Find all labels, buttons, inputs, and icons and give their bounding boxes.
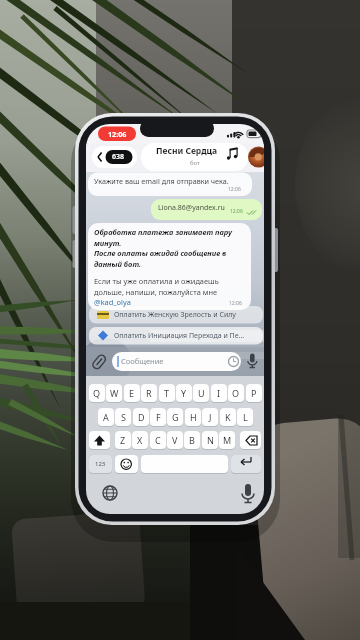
staticText: A — [103, 411, 109, 423]
staticText: C — [155, 434, 161, 446]
staticText: 12:06 — [108, 129, 127, 139]
staticText: K — [225, 411, 231, 423]
staticText: 638 — [112, 152, 125, 162]
staticText: Y — [181, 387, 187, 399]
staticText: B — [189, 434, 195, 446]
button[interactable]: H — [185, 408, 201, 426]
staticText: X — [137, 434, 143, 446]
button[interactable]: W — [106, 384, 122, 402]
staticText: 12:06 — [228, 186, 241, 193]
button[interactable] — [89, 431, 110, 449]
staticText: T — [164, 387, 170, 399]
staticText: S — [121, 411, 126, 423]
button[interactable]: 638 — [105, 150, 132, 164]
staticText: Песни Сердца — [156, 145, 218, 157]
button[interactable]: C — [150, 431, 166, 449]
staticText: Оплатить Инициация Перехода и Пе... — [114, 331, 245, 341]
staticText: P — [251, 387, 257, 399]
button[interactable]: I — [211, 384, 227, 402]
staticText: H — [190, 411, 197, 423]
staticText: O — [232, 387, 240, 399]
button[interactable]: R — [141, 384, 157, 402]
button[interactable] — [115, 455, 138, 473]
button[interactable]: A — [98, 408, 114, 426]
staticText: V — [172, 434, 178, 446]
staticText: D — [138, 411, 145, 423]
staticText: данный бот. — [94, 259, 142, 269]
button[interactable]: G — [167, 408, 183, 426]
button[interactable]: P — [246, 384, 262, 402]
staticText: бот — [190, 159, 200, 167]
button[interactable]: K — [220, 408, 236, 426]
button[interactable]: B — [184, 431, 200, 449]
button[interactable] — [231, 455, 261, 473]
staticText: Q — [93, 387, 101, 399]
staticText: Сообщение — [121, 356, 164, 366]
staticText: Если ты уже оплатила и ожидаешь — [94, 276, 219, 286]
staticText: W — [110, 387, 119, 399]
staticText: F — [156, 411, 161, 423]
button[interactable]: U — [193, 384, 209, 402]
staticText: Оплатить Женскую Зрелость и Силу — [114, 310, 236, 320]
staticText: G — [172, 411, 179, 423]
button[interactable]: E — [124, 384, 140, 402]
button[interactable] — [141, 455, 228, 473]
staticText: U — [198, 387, 205, 399]
staticText: Обработка платежа занимает пару — [94, 227, 233, 237]
button[interactable]: J — [202, 408, 218, 426]
button[interactable]: Песни Сердца — [141, 144, 233, 158]
staticText: R — [146, 387, 152, 399]
button[interactable]: Q — [89, 384, 105, 402]
button[interactable]: F — [150, 408, 166, 426]
staticText: дольше, напиши, пожалуйста мне — [94, 287, 218, 297]
button[interactable]: 123 — [89, 455, 112, 473]
button[interactable]: S — [115, 408, 131, 426]
staticText: N — [207, 434, 214, 446]
staticText: Z — [120, 434, 126, 446]
staticText: Укажите ваш email для отправки чека. — [94, 176, 229, 186]
staticText: M — [223, 434, 232, 446]
staticText: После оплаты ожидай сообщение в — [94, 248, 227, 258]
button[interactable]: V — [167, 431, 183, 449]
staticText: минут. — [94, 238, 122, 248]
button[interactable]: Сообщение — [112, 352, 241, 371]
button[interactable]: D — [133, 408, 149, 426]
button[interactable]: N — [202, 431, 218, 449]
staticText: 12:06 — [230, 208, 243, 215]
button[interactable] — [240, 431, 261, 449]
staticText: @kad_olya — [94, 297, 131, 307]
staticText: I — [217, 387, 221, 399]
staticText: Liona.86@yandex.ru — [158, 203, 225, 213]
button[interactable]: L — [237, 408, 253, 426]
staticText: 123 — [95, 460, 106, 468]
button[interactable]: Z — [115, 431, 131, 449]
staticText: J — [209, 411, 212, 423]
button[interactable]: T — [159, 384, 175, 402]
staticText: 12:06 — [229, 300, 242, 307]
button[interactable]: X — [132, 431, 148, 449]
button[interactable]: O — [228, 384, 244, 402]
button[interactable]: Оплатить Инициация Перехода и Пе... — [89, 327, 263, 345]
button[interactable]: Y — [176, 384, 192, 402]
staticText: E — [129, 387, 135, 399]
staticText: L — [243, 411, 248, 423]
button[interactable]: Оплатить Женскую Зрелость и Силу — [89, 306, 263, 324]
button[interactable]: M — [219, 431, 235, 449]
